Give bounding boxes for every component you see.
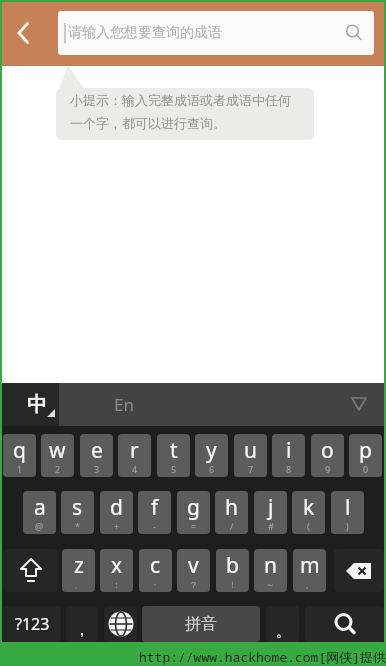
button[interactable] (334, 383, 384, 426)
staticText: 0 (363, 463, 369, 475)
staticText: # (268, 520, 274, 532)
staticText: - (153, 520, 156, 532)
button[interactable]: a (23, 491, 56, 534)
staticText: z (74, 551, 84, 580)
staticText: i (286, 436, 292, 465)
staticText: u (244, 436, 257, 465)
staticText: 7 (248, 463, 254, 475)
staticText: a (34, 493, 46, 522)
staticText: ， (74, 620, 90, 640)
button[interactable]: u (234, 434, 267, 477)
staticText: @ (35, 520, 44, 532)
staticText: b (226, 551, 239, 580)
button[interactable]: q (3, 434, 36, 477)
staticText: e (91, 436, 103, 465)
button[interactable]: 。 (266, 606, 299, 642)
staticText: d (110, 493, 123, 522)
staticText: t (170, 436, 178, 465)
button[interactable] (8, 16, 44, 52)
staticText: / (230, 520, 234, 532)
staticText: f (151, 493, 159, 522)
staticText: · (154, 578, 157, 590)
button[interactable]: 请输入您想要查询的成语 (58, 11, 374, 55)
button[interactable]: s (61, 491, 94, 534)
staticText: p (359, 436, 372, 465)
button[interactable]: p (349, 434, 382, 477)
staticText: 6 (209, 463, 215, 475)
button[interactable]: v (177, 549, 210, 592)
button[interactable] (104, 606, 137, 642)
staticText: n (264, 551, 277, 580)
button[interactable]: t (157, 434, 190, 477)
staticText: l (345, 493, 351, 522)
button[interactable]: e (80, 434, 113, 477)
staticText: k (303, 493, 315, 522)
staticText: 请输入您想要查询的成语 (68, 24, 222, 42)
staticText: ?123 (15, 613, 50, 635)
button[interactable]: i (272, 434, 305, 477)
button[interactable]: k (292, 491, 325, 534)
button[interactable]: ?123 (3, 606, 61, 642)
button[interactable] (3, 549, 58, 592)
staticText: ～ (266, 579, 275, 590)
button[interactable]: j (254, 491, 287, 534)
staticText: 5 (171, 463, 177, 475)
staticText: c (150, 551, 161, 580)
button[interactable]: z (62, 549, 95, 592)
button[interactable]: o (311, 434, 344, 477)
button[interactable]: En (89, 383, 159, 426)
staticText: 。 (305, 579, 314, 590)
staticText: v (188, 551, 199, 580)
staticText: h (225, 493, 238, 522)
staticText: 。 (276, 623, 290, 641)
staticText: En (114, 393, 134, 416)
staticText: ！ (228, 579, 237, 590)
staticText: ？ (189, 579, 198, 590)
staticText: s (72, 493, 83, 522)
button[interactable]: w (41, 434, 74, 477)
button[interactable] (334, 549, 384, 592)
staticText: = (191, 520, 197, 532)
button[interactable]: f (138, 491, 171, 534)
staticText: y (206, 436, 217, 465)
button[interactable]: 拼音 (142, 606, 260, 642)
button[interactable]: d (100, 491, 133, 534)
button[interactable]: h (215, 491, 248, 534)
staticText: 中 (27, 392, 47, 417)
staticText: 拼音 (185, 614, 217, 634)
button[interactable] (305, 606, 384, 642)
staticText: 9 (325, 463, 331, 475)
button[interactable]: y (195, 434, 228, 477)
button[interactable]: l (331, 491, 364, 534)
staticText: o (321, 436, 334, 465)
staticText: ( (307, 520, 310, 532)
staticText: j (268, 493, 274, 522)
staticText: m (300, 551, 320, 580)
staticText: ) (346, 520, 349, 532)
button[interactable]: c (139, 549, 172, 592)
staticText: ： (112, 579, 121, 590)
staticText: q (13, 436, 26, 465)
staticText: 3 (94, 463, 100, 475)
staticText: + (114, 520, 120, 532)
staticText: * (75, 520, 80, 532)
button[interactable]: b (216, 549, 249, 592)
staticText: 小提示：输入完整成语或者成语中任何 (70, 92, 291, 108)
button[interactable]: 中 (2, 383, 59, 426)
staticText: http://www.hackhome.com[网侠]提供 (139, 648, 386, 666)
button[interactable]: g (177, 491, 210, 534)
staticText: 4 (132, 463, 138, 475)
button[interactable]: n (254, 549, 287, 592)
staticText: 、 (74, 579, 83, 590)
staticText: 一个字，都可以进行查询。 (70, 115, 226, 131)
button[interactable]: r (118, 434, 151, 477)
staticText: 2 (55, 463, 61, 475)
staticText: w (49, 436, 66, 465)
staticText: r (130, 436, 139, 465)
button[interactable]: ， (66, 606, 98, 642)
staticText: g (187, 493, 200, 522)
staticText: x (111, 551, 123, 580)
button[interactable]: x (100, 549, 133, 592)
button[interactable]: m (293, 549, 326, 592)
staticText: 8 (286, 463, 292, 475)
